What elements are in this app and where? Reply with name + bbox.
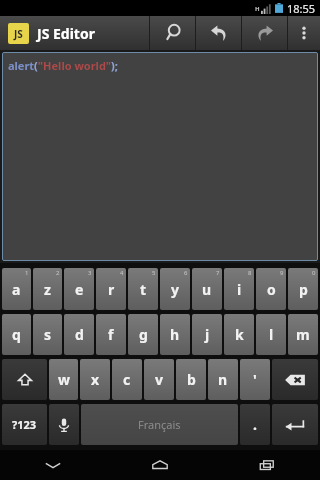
staticText: '	[253, 370, 257, 389]
staticText: 5	[152, 269, 156, 277]
staticText: 9	[280, 269, 284, 277]
button[interactable]: Français	[81, 404, 238, 445]
staticText: 4	[120, 269, 124, 277]
button[interactable]: o	[256, 268, 286, 310]
button[interactable]: t	[128, 268, 158, 310]
button[interactable]: l	[256, 314, 286, 355]
button[interactable]: e	[64, 268, 94, 310]
button[interactable]: ?123	[2, 404, 47, 445]
staticText: ?123	[12, 417, 37, 432]
staticText: s	[44, 325, 52, 344]
staticText: m	[296, 325, 310, 344]
button[interactable]: j	[192, 314, 222, 355]
button[interactable]: k	[224, 314, 254, 355]
staticText: k	[235, 325, 244, 344]
staticText: u	[202, 280, 212, 299]
button[interactable]: alert("Hello world");	[3, 53, 317, 260]
button[interactable]: Home	[106, 450, 213, 480]
staticText: j	[205, 325, 210, 344]
button[interactable]: Backspace	[272, 359, 318, 400]
staticText: 7	[216, 269, 220, 277]
button[interactable]: d	[64, 314, 94, 355]
button[interactable]: Shift	[2, 359, 47, 400]
button[interactable]: p	[288, 268, 318, 310]
button[interactable]: Hide keyboard	[0, 450, 106, 480]
staticText: d	[75, 325, 84, 344]
button[interactable]: f	[96, 314, 126, 355]
staticText: 0	[312, 269, 316, 277]
button[interactable]: More options	[288, 16, 320, 50]
button[interactable]: Recent apps	[213, 450, 320, 480]
staticText: JS	[14, 27, 23, 41]
staticText: r	[108, 280, 115, 299]
staticText: alert("Hello world");	[8, 58, 118, 73]
staticText: 8	[248, 269, 252, 277]
staticText: n	[218, 370, 228, 389]
staticText: t	[140, 280, 147, 299]
staticText: x	[91, 370, 100, 389]
staticText: l	[269, 325, 274, 344]
staticText: h	[170, 325, 180, 344]
staticText: c	[123, 370, 131, 389]
staticText: 2	[56, 269, 60, 277]
button[interactable]: x	[80, 359, 110, 400]
button[interactable]: Redo	[242, 16, 287, 50]
button[interactable]: Enter	[272, 404, 318, 445]
button[interactable]: i	[224, 268, 254, 310]
button[interactable]: v	[144, 359, 174, 400]
button[interactable]: Voice input	[49, 404, 79, 445]
staticText: i	[237, 280, 242, 299]
button[interactable]: g	[128, 314, 158, 355]
button[interactable]: y	[160, 268, 190, 310]
button[interactable]: z	[33, 268, 62, 310]
staticText: q	[12, 325, 21, 344]
staticText: 18:55	[287, 1, 316, 16]
staticText: v	[155, 370, 163, 389]
staticText: 3	[88, 269, 92, 277]
staticText: 6	[184, 269, 188, 277]
button[interactable]: m	[288, 314, 318, 355]
button[interactable]: '	[240, 359, 270, 400]
staticText: b	[187, 370, 196, 389]
staticText: p	[299, 280, 308, 299]
staticText: .	[253, 415, 257, 434]
staticText: z	[44, 280, 51, 299]
staticText: o	[267, 280, 276, 299]
staticText: JS Editor	[37, 24, 95, 43]
staticText: y	[171, 280, 179, 299]
button[interactable]: u	[192, 268, 222, 310]
button[interactable]: n	[208, 359, 238, 400]
button[interactable]: w	[49, 359, 78, 400]
staticText: H	[255, 5, 260, 13]
button[interactable]: c	[112, 359, 142, 400]
staticText: Français	[138, 417, 181, 432]
staticText: g	[139, 325, 148, 344]
staticText: 1	[25, 269, 29, 277]
button[interactable]: Undo	[196, 16, 241, 50]
button[interactable]: h	[160, 314, 190, 355]
staticText: w	[58, 370, 70, 389]
button[interactable]: a	[2, 268, 31, 310]
button[interactable]: s	[33, 314, 62, 355]
button[interactable]: b	[176, 359, 206, 400]
button[interactable]: Search	[150, 16, 195, 50]
button[interactable]: .	[240, 404, 270, 445]
button[interactable]: JS	[0, 16, 149, 50]
button[interactable]: q	[2, 314, 31, 355]
staticText: f	[108, 325, 114, 344]
button[interactable]: r	[96, 268, 126, 310]
staticText: e	[75, 280, 84, 299]
staticText: a	[12, 280, 21, 299]
